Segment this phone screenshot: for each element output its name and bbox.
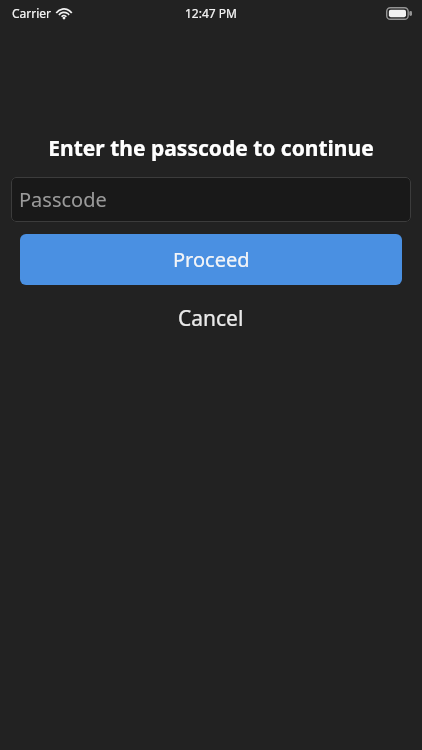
button[interactable]: Cancel — [0, 298, 422, 338]
staticText: Cancel — [178, 304, 244, 333]
staticText: Proceed — [173, 246, 250, 273]
staticText: 12:47 PM — [185, 5, 237, 21]
staticText: Enter the passcode to continue — [48, 134, 374, 163]
staticText: Passcode — [19, 186, 107, 213]
button[interactable]: Passcode — [11, 177, 411, 222]
button[interactable]: Proceed — [20, 234, 402, 285]
staticText: Carrier — [12, 5, 52, 21]
